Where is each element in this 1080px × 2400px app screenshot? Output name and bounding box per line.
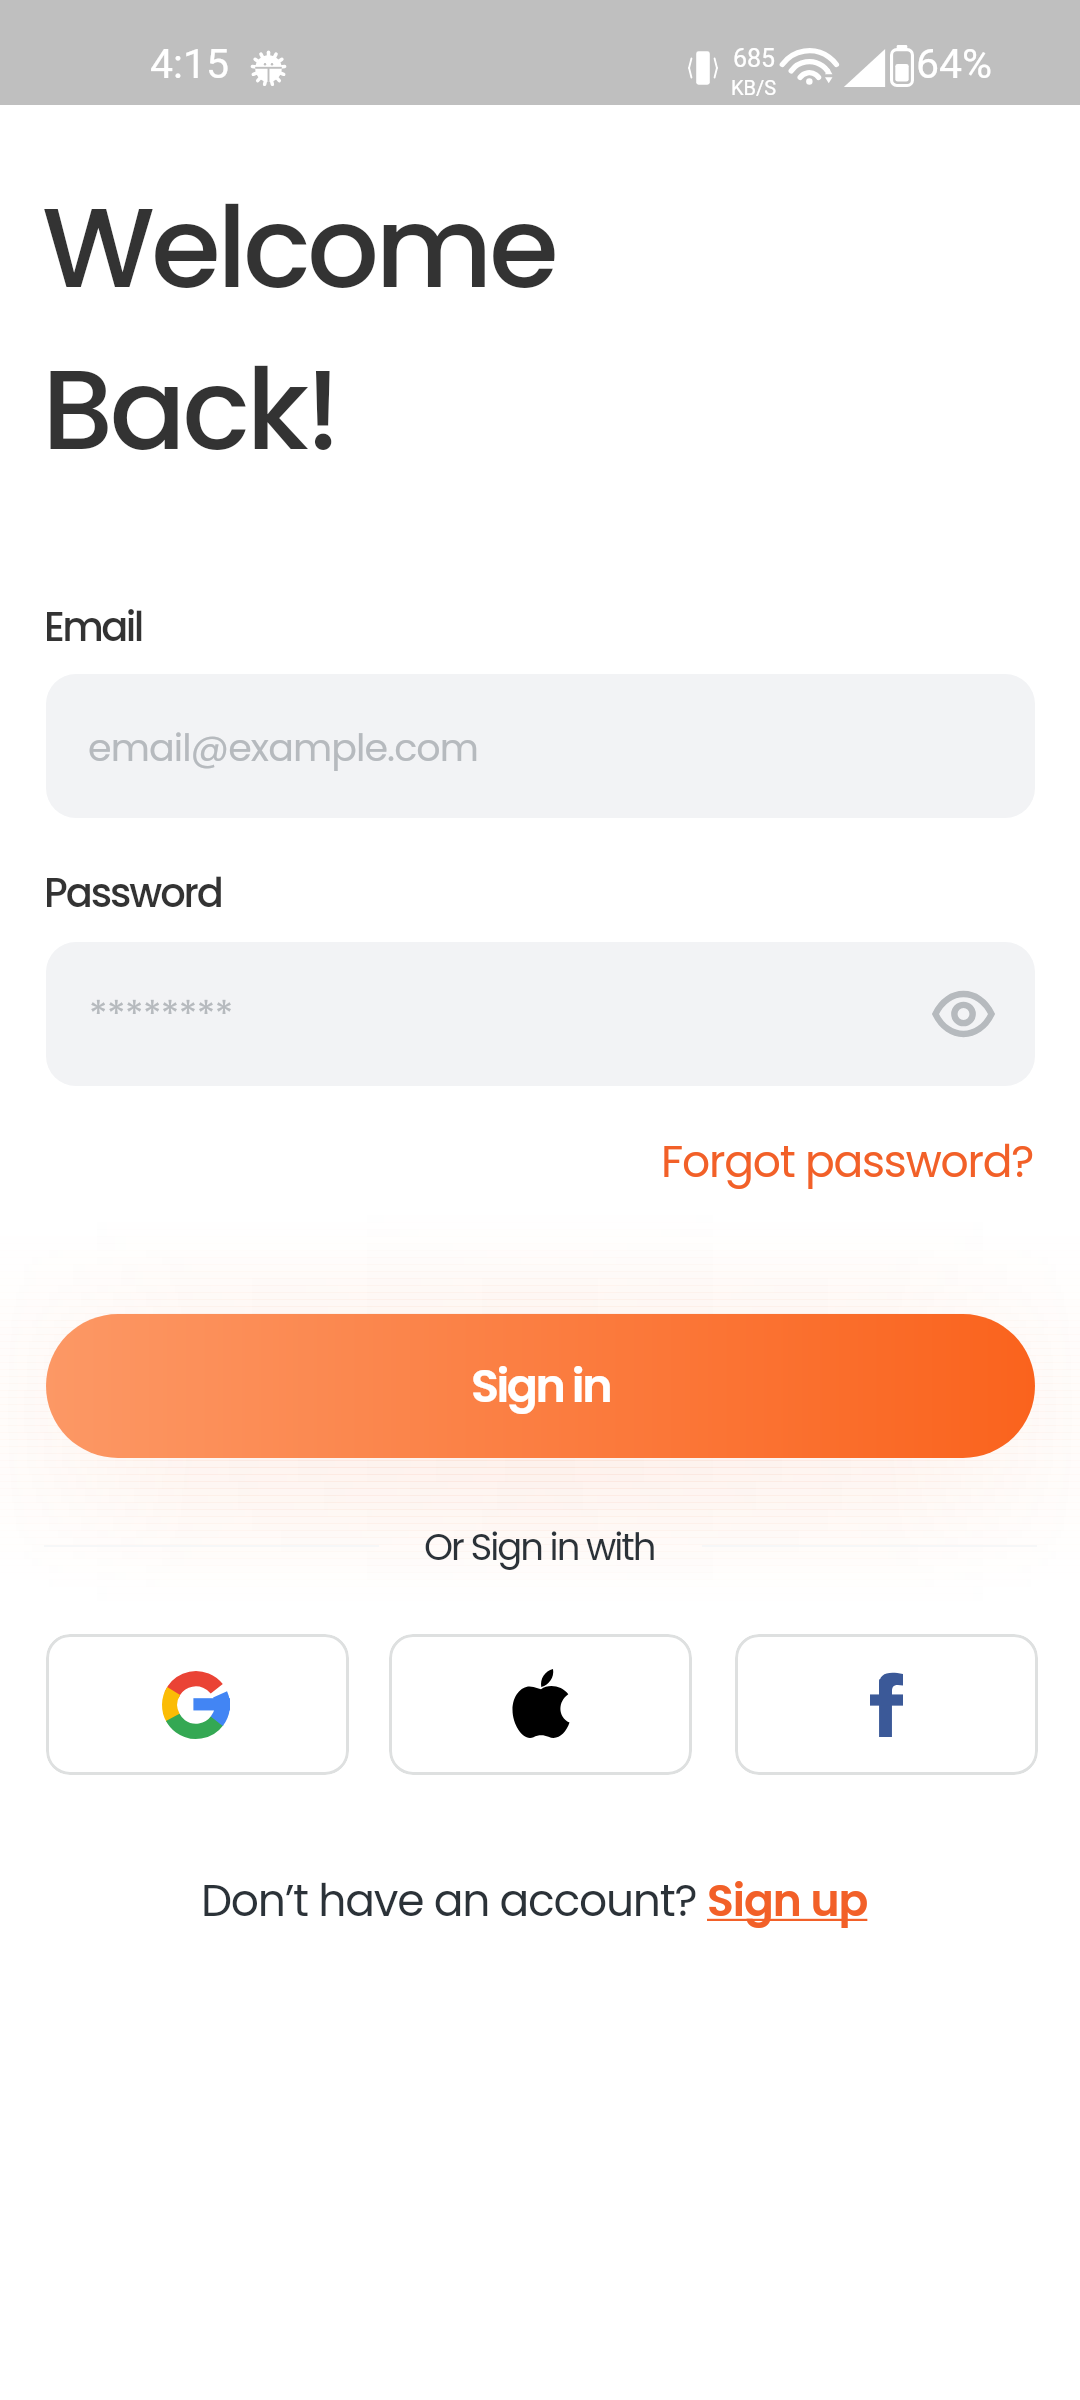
staticText: 685 <box>733 44 776 73</box>
button[interactable]: Sign in with Google <box>46 1634 349 1775</box>
staticText: Sign up <box>707 1870 868 1932</box>
staticText: Email <box>44 599 142 655</box>
staticText: email@example.com <box>88 721 478 774</box>
staticText: Forgot password? <box>661 1131 1034 1193</box>
staticText: Password <box>44 865 222 921</box>
staticText: Don’t have an account? <box>201 1870 707 1932</box>
button[interactable]: Sign in with Facebook <box>735 1634 1038 1775</box>
button[interactable]: Sign in <box>46 1314 1035 1458</box>
staticText: 64% <box>916 40 993 88</box>
staticText: 4:15 <box>150 40 230 88</box>
button[interactable]: Forgot password? <box>653 1123 1042 1201</box>
staticText: ******** <box>89 988 233 1041</box>
staticText: Welcome Back! <box>42 168 555 488</box>
button[interactable]: email@example.com <box>46 674 1035 818</box>
staticText: Or Sign in with <box>424 1521 655 1573</box>
button[interactable]: ******** <box>46 942 1035 1086</box>
staticText: Sign in <box>471 1354 611 1418</box>
button[interactable]: Sign up <box>707 1870 868 1932</box>
button[interactable]: Show password <box>925 976 1001 1052</box>
button[interactable]: Sign in with Apple <box>389 1634 692 1775</box>
staticText: KB/S <box>731 76 777 99</box>
